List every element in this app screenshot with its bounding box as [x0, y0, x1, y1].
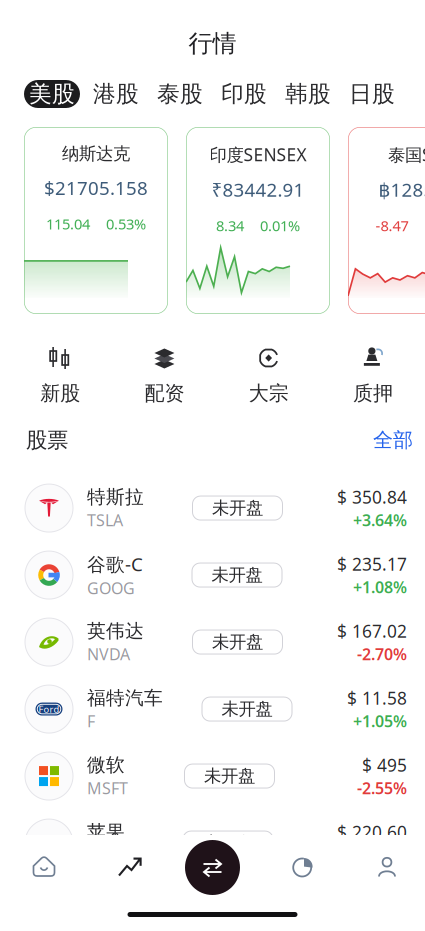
- staticText: +0.42%: [353, 844, 407, 866]
- button[interactable]: Profile: [356, 843, 418, 891]
- button[interactable]: Portfolio: [272, 843, 334, 891]
- button[interactable]: 印度SENSEX: [186, 127, 330, 314]
- staticText: 印度SENSEX: [209, 143, 306, 166]
- button[interactable]: Trade: [185, 840, 240, 895]
- button[interactable]: 美股: [24, 80, 80, 108]
- button[interactable]: 港股: [88, 80, 144, 108]
- button[interactable]: 英伟达: [0, 609, 425, 676]
- button[interactable]: Home: [13, 843, 75, 891]
- button[interactable]: 苹果: [0, 810, 425, 877]
- staticText: 微软: [87, 753, 125, 776]
- staticText: $ 11.58: [347, 686, 407, 709]
- staticText: 质押: [353, 381, 393, 406]
- staticText: 股票: [26, 427, 68, 453]
- button[interactable]: 新股: [8, 347, 112, 406]
- staticText: +3.64%: [353, 509, 407, 531]
- staticText: $ 220.60: [337, 820, 407, 843]
- staticText: 印股: [221, 80, 267, 108]
- staticText: 纳斯达克: [62, 143, 130, 164]
- staticText: ₹83442.91: [211, 177, 304, 202]
- staticText: ฿1285.12: [378, 177, 425, 202]
- button[interactable]: 韩股: [280, 80, 336, 108]
- staticText: GOOG: [87, 577, 135, 598]
- staticText: $ 235.17: [337, 552, 407, 575]
- staticText: 未开盘: [221, 698, 272, 720]
- staticText: 福特汽车: [87, 686, 163, 709]
- staticText: MSFT: [87, 777, 128, 799]
- staticText: $21705.158: [44, 175, 148, 200]
- staticText: 全部: [373, 428, 413, 452]
- button[interactable]: 纳斯达克: [24, 127, 168, 314]
- staticText: 8.34: [216, 216, 244, 235]
- staticText: NVDA: [87, 643, 130, 665]
- staticText: +1.08%: [353, 576, 407, 598]
- staticText: 港股: [93, 80, 139, 108]
- button[interactable]: 微软: [0, 743, 425, 810]
- staticText: +1.05%: [353, 710, 407, 732]
- button[interactable]: 大宗: [216, 347, 321, 406]
- staticText: 未开盘: [202, 832, 253, 854]
- staticText: -8.47: [375, 216, 408, 235]
- staticText: 日股: [349, 80, 395, 108]
- button[interactable]: Ford: [0, 676, 425, 743]
- button[interactable]: 质押: [321, 347, 425, 406]
- staticText: 新股: [40, 381, 80, 406]
- staticText: 115.04: [46, 214, 90, 234]
- staticText: 未开盘: [204, 765, 255, 787]
- button[interactable]: 全部: [373, 428, 413, 452]
- staticText: 0.53%: [106, 214, 146, 234]
- staticText: 苹果: [87, 820, 125, 843]
- button[interactable]: 配资: [112, 347, 216, 406]
- staticText: -2.70%: [357, 643, 407, 665]
- staticText: $ 495: [362, 753, 407, 776]
- staticText: 谷歌-C: [87, 551, 143, 576]
- staticText: 大宗: [249, 381, 289, 406]
- staticText: $ 350.84: [337, 485, 407, 508]
- staticText: 未开盘: [211, 564, 262, 586]
- button[interactable]: 特斯拉: [0, 475, 425, 542]
- staticText: F: [87, 710, 95, 732]
- staticText: 0.01%: [260, 216, 300, 235]
- button[interactable]: 日股: [344, 80, 400, 108]
- staticText: TSLA: [87, 509, 123, 531]
- staticText: 美股: [29, 80, 75, 108]
- staticText: 泰国SET: [388, 143, 425, 166]
- staticText: 未开盘: [212, 497, 263, 519]
- staticText: 韩股: [285, 80, 331, 108]
- staticText: 特斯拉: [87, 485, 144, 508]
- staticText: 泰股: [157, 80, 203, 108]
- staticText: $ 167.02: [337, 619, 407, 642]
- staticText: 行情: [188, 29, 236, 58]
- button[interactable]: 谷歌-C: [0, 542, 425, 609]
- button[interactable]: 泰国SET: [348, 127, 425, 314]
- button[interactable]: 泰股: [152, 80, 208, 108]
- staticText: -2.55%: [357, 777, 407, 799]
- staticText: 英伟达: [87, 619, 144, 642]
- button[interactable]: 印股: [216, 80, 272, 108]
- staticText: 配资: [144, 381, 184, 406]
- staticText: Ford: [38, 703, 59, 715]
- staticText: 未开盘: [212, 631, 263, 653]
- button[interactable]: Markets: [99, 843, 161, 891]
